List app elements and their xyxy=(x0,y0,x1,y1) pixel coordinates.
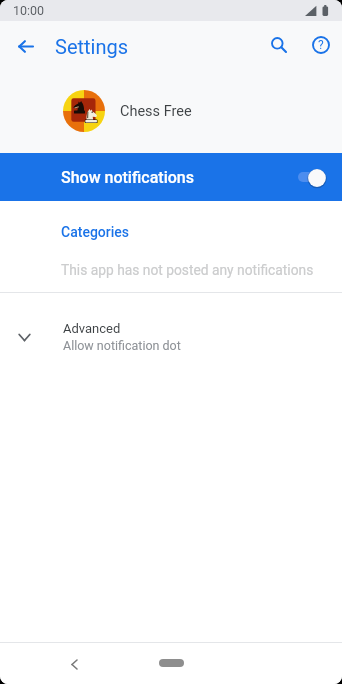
staticText: This app has not posted any notification… xyxy=(61,262,314,278)
button[interactable]: Search xyxy=(257,23,301,67)
staticText: Advanced xyxy=(63,321,121,336)
staticText: Allow notification dot xyxy=(63,338,181,353)
staticText: Show notifications xyxy=(61,168,195,187)
button[interactable]: Advanced xyxy=(0,293,342,350)
button[interactable]: Show notifications xyxy=(0,153,342,201)
staticText: 10:00 xyxy=(13,3,45,18)
staticText: Settings xyxy=(55,35,129,58)
button[interactable]: Help xyxy=(299,23,342,67)
button[interactable]: Back xyxy=(1,22,49,70)
staticText: Categories xyxy=(61,224,130,240)
staticText: ? xyxy=(318,38,324,52)
button[interactable]: Back xyxy=(60,650,88,678)
button[interactable]: Home xyxy=(159,659,184,667)
staticText: Chess Free xyxy=(120,103,192,120)
